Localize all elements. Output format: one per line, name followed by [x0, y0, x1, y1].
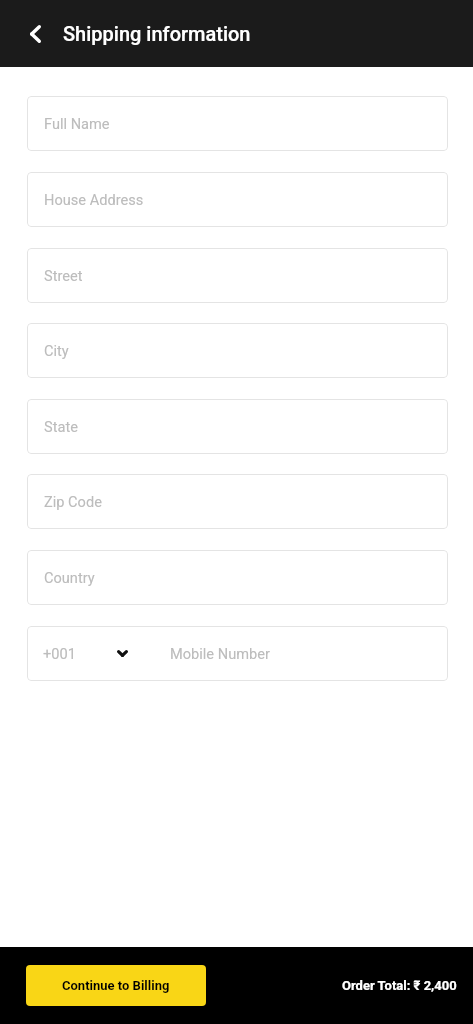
staticText: Shipping information [63, 22, 251, 45]
staticText: Continue to Billing [62, 978, 170, 993]
staticText: Zip Code [44, 493, 102, 510]
button[interactable]: Back [17, 12, 54, 56]
button[interactable]: +001 [27, 626, 142, 681]
button[interactable]: Street [27, 248, 448, 303]
staticText: +001 [43, 645, 76, 662]
staticText: Country [44, 569, 95, 586]
staticText: State [44, 418, 78, 435]
button[interactable]: House Address [27, 172, 448, 227]
staticText: Mobile Number [170, 645, 270, 662]
button[interactable]: Continue to Billing [26, 965, 206, 1006]
staticText: City [44, 342, 69, 359]
staticText: Full Name [44, 115, 110, 132]
button[interactable]: State [27, 399, 448, 454]
button[interactable]: City [27, 323, 448, 378]
button[interactable]: Full Name [27, 96, 448, 151]
staticText: Street [44, 267, 83, 284]
staticText: House Address [44, 191, 144, 208]
staticText: Order Total: ₹ 2,400 [342, 978, 457, 993]
button[interactable]: Zip Code [27, 474, 448, 529]
button[interactable]: Country [27, 550, 448, 605]
